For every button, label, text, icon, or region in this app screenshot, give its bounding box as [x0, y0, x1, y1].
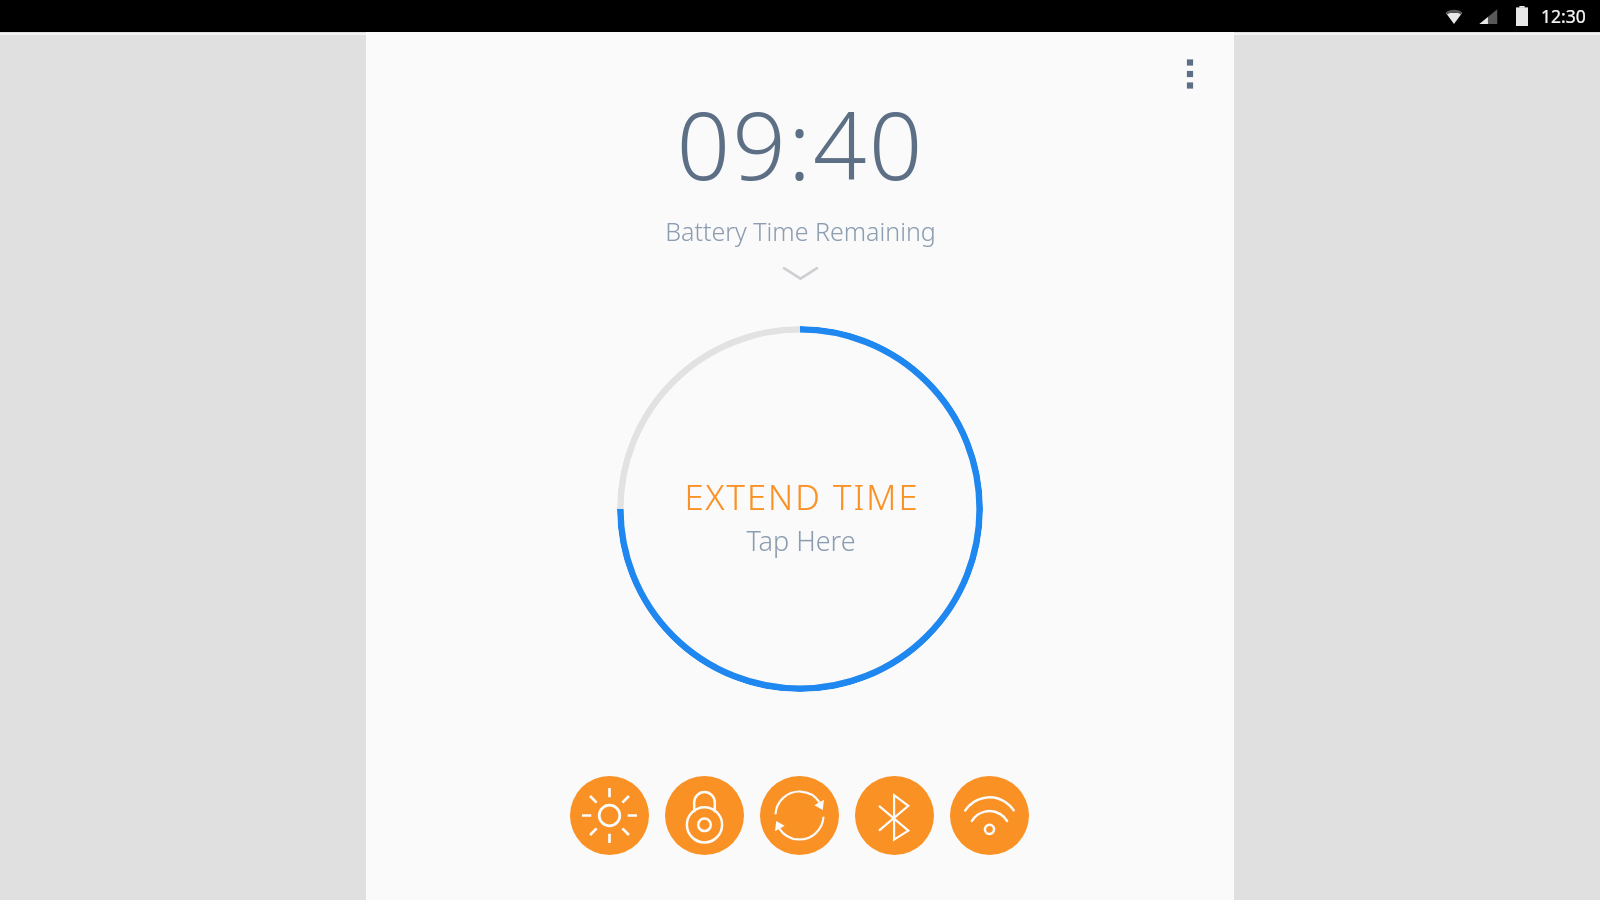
staticText: 12:30	[1541, 4, 1586, 28]
staticText: Tap Here	[746, 522, 856, 559]
button[interactable]: Wi-Fi	[950, 776, 1029, 855]
staticText: EXTEND TIME	[684, 473, 920, 520]
button[interactable]: Auto sync	[760, 776, 839, 855]
staticText: Battery Time Remaining	[665, 214, 936, 248]
staticText: 09:40	[676, 80, 925, 208]
button[interactable]: Expand details	[770, 254, 830, 292]
button[interactable]: EXTEND TIME	[617, 326, 983, 692]
button[interactable]: Bluetooth	[855, 776, 934, 855]
button[interactable]: Brightness	[570, 776, 649, 855]
button[interactable]: More options	[1162, 46, 1218, 102]
button[interactable]: Rotation lock	[665, 776, 744, 855]
